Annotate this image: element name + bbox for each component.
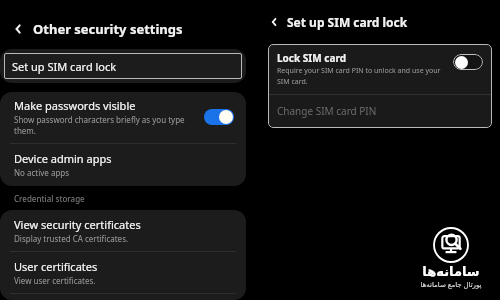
staticText: پورتال جامع سامانه‌ها xyxy=(420,280,482,290)
button[interactable]: Lock SIM card xyxy=(268,44,492,94)
staticText: Lock SIM card xyxy=(277,51,346,65)
staticText: Change SIM card PIN xyxy=(277,104,377,118)
button[interactable]: View security certificates xyxy=(0,210,246,251)
button[interactable] xyxy=(453,54,483,70)
staticText: Show password characters briefly as you … xyxy=(14,114,196,136)
button[interactable]: Make passwords visible xyxy=(0,92,246,143)
button[interactable]: Set up SIM card lock xyxy=(4,53,242,79)
staticText: View security certificates xyxy=(14,217,141,232)
staticText: User certificates xyxy=(14,259,98,274)
button[interactable]: Change SIM card PIN xyxy=(268,95,492,128)
staticText: Make passwords visible xyxy=(14,98,136,113)
staticText: Display trusted CA certificates. xyxy=(14,233,129,244)
staticText: Set up SIM card lock xyxy=(287,14,408,30)
button[interactable]: Device admin apps xyxy=(0,144,246,186)
button[interactable]: Install from device storage xyxy=(0,294,246,300)
staticText: Other security settings xyxy=(33,20,183,38)
staticText: Device admin apps xyxy=(14,151,112,166)
button[interactable]: User certificates xyxy=(0,252,246,293)
staticText: سامانه‌ها xyxy=(422,264,480,279)
button[interactable]: Back xyxy=(8,19,28,39)
staticText: No active apps xyxy=(14,167,70,178)
staticText: Require your SIM card PIN to unlock and … xyxy=(277,66,443,86)
staticText: Credential storage xyxy=(14,193,85,204)
button[interactable] xyxy=(204,109,234,125)
staticText: View user certificates. xyxy=(14,275,96,286)
staticText: Set up SIM card lock xyxy=(12,59,117,74)
button[interactable]: Back xyxy=(265,13,283,31)
